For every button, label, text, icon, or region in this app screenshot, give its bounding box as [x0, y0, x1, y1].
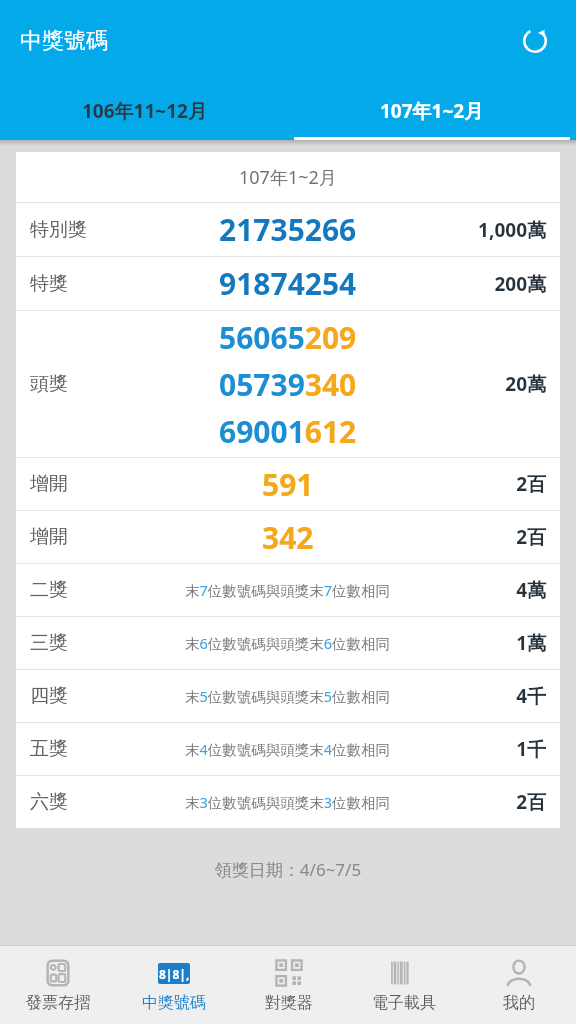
button[interactable]: 我的	[461, 946, 576, 1024]
staticText: 2百	[456, 471, 546, 497]
staticText: 69001612	[219, 411, 357, 452]
staticText: 末3位數號碼與頭獎末3位數相同	[185, 792, 391, 812]
button[interactable]: 106年11~12月	[0, 82, 288, 140]
staticText: 1,000萬	[456, 217, 546, 243]
staticText: 增開	[30, 472, 120, 496]
staticText: 200萬	[456, 271, 546, 297]
staticText: 特獎	[30, 272, 120, 296]
staticText: 05739340	[219, 364, 357, 405]
staticText: 發票存摺	[26, 993, 90, 1013]
button[interactable]: 8|8|,	[116, 946, 231, 1024]
staticText: 中獎號碼	[142, 993, 206, 1013]
button[interactable]: Refresh	[512, 18, 558, 64]
staticText: 二獎	[30, 578, 120, 602]
staticText: 我的	[503, 993, 535, 1013]
staticText: 591	[262, 464, 314, 505]
staticText: 4千	[456, 683, 546, 709]
staticText: 電子載具	[372, 993, 436, 1013]
staticText: 特別獎	[30, 218, 120, 242]
staticText: 20萬	[456, 371, 546, 397]
button[interactable]: 特別獎	[16, 203, 560, 256]
staticText: 106年11~12月	[82, 98, 207, 124]
staticText: 56065209	[219, 317, 357, 358]
staticText: 末4位數號碼與頭獎末4位數相同	[185, 739, 391, 759]
staticText: 107年1~2月	[380, 98, 484, 124]
staticText: 107年1~2月	[239, 165, 337, 190]
staticText: 2百	[456, 789, 546, 815]
button[interactable]: 發票存摺	[0, 946, 116, 1024]
staticText: 91874254	[219, 263, 357, 304]
staticText: 2百	[456, 524, 546, 550]
staticText: 末5位數號碼與頭獎末5位數相同	[185, 686, 391, 706]
button[interactable]: 特獎	[16, 257, 560, 310]
staticText: 四獎	[30, 684, 120, 708]
staticText: 4萬	[456, 577, 546, 603]
staticText: 中獎號碼	[20, 27, 108, 55]
staticText: 增開	[30, 525, 120, 549]
button[interactable]: 六獎	[16, 776, 560, 828]
button[interactable]: 對獎器	[231, 946, 346, 1024]
button[interactable]: 頭獎	[16, 311, 560, 457]
button[interactable]: 電子載具	[346, 946, 461, 1024]
button[interactable]: 增開	[16, 511, 560, 563]
staticText: 8|8|,	[159, 966, 190, 982]
staticText: 21735266	[219, 209, 357, 250]
staticText: 1千	[456, 736, 546, 762]
button[interactable]: 三獎	[16, 617, 560, 669]
staticText: 對獎器	[265, 993, 313, 1013]
staticText: 三獎	[30, 631, 120, 655]
button[interactable]: 107年1~2月	[288, 82, 576, 140]
staticText: 1萬	[456, 630, 546, 656]
staticText: 342	[262, 517, 314, 558]
staticText: 末7位數號碼與頭獎末7位數相同	[185, 580, 391, 600]
button[interactable]: 二獎	[16, 564, 560, 616]
button[interactable]: 增開	[16, 458, 560, 510]
staticText: 領獎日期：4/6~7/5	[0, 858, 576, 881]
button[interactable]: 四獎	[16, 670, 560, 722]
staticText: 末6位數號碼與頭獎末6位數相同	[185, 633, 391, 653]
button[interactable]: 五獎	[16, 723, 560, 775]
staticText: 六獎	[30, 790, 120, 814]
staticText: 頭獎	[30, 372, 120, 396]
staticText: 五獎	[30, 737, 120, 761]
